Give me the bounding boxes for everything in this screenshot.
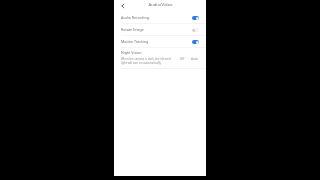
button[interactable]: Back — [115, 0, 129, 12]
button[interactable]: Toggle — [192, 28, 199, 32]
button[interactable]: Rotate Image — [114, 24, 206, 35]
staticText: Rotate Image — [121, 27, 144, 32]
staticText: Night Vision — [121, 50, 142, 55]
staticText: Off — [180, 57, 185, 61]
button[interactable]: Night Vision — [114, 48, 206, 68]
button[interactable]: Motion Tracking — [114, 36, 206, 47]
staticText: Auto — [191, 57, 198, 61]
button[interactable]: Audio Recording — [114, 12, 206, 23]
staticText: Motion Tracking — [121, 39, 149, 44]
staticText: Audio Recording — [121, 15, 149, 20]
staticText: When the camera is dark, the infrared li… — [121, 57, 178, 65]
staticText: Audio/Video — [148, 2, 173, 8]
button[interactable]: Toggle — [192, 40, 199, 44]
button[interactable]: Toggle — [192, 16, 199, 20]
